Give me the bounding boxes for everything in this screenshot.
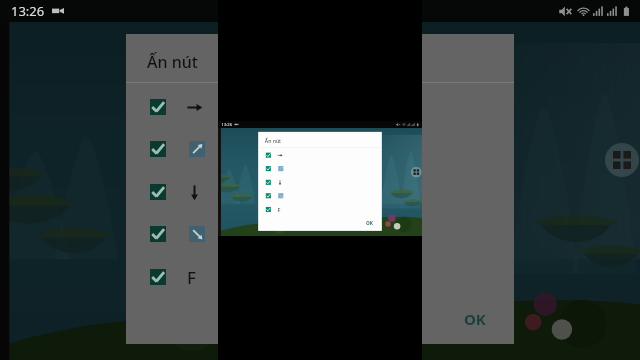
button[interactable]: F [264, 204, 303, 215]
staticText: Ấn nút [265, 137, 281, 144]
staticText: 13:26 [11, 2, 45, 20]
staticText: Ấn nút [147, 51, 198, 73]
button[interactable] [264, 163, 303, 174]
staticText: OK [366, 220, 373, 226]
staticText: F [187, 266, 196, 289]
button[interactable]: Assistant menu [605, 143, 639, 177]
button[interactable] [264, 177, 303, 188]
button[interactable] [264, 190, 303, 201]
button[interactable]: OK [456, 303, 494, 335]
button[interactable] [146, 174, 266, 210]
button[interactable] [146, 131, 266, 167]
button[interactable]: OK [363, 218, 375, 228]
staticText: OK [464, 309, 486, 329]
staticText: F [278, 206, 280, 213]
staticText: 13:26 [221, 122, 232, 127]
button[interactable] [264, 149, 303, 161]
button[interactable]: F [146, 259, 266, 295]
button[interactable] [146, 216, 266, 252]
button[interactable]: Assistant menu [411, 167, 422, 178]
button[interactable] [146, 89, 266, 125]
